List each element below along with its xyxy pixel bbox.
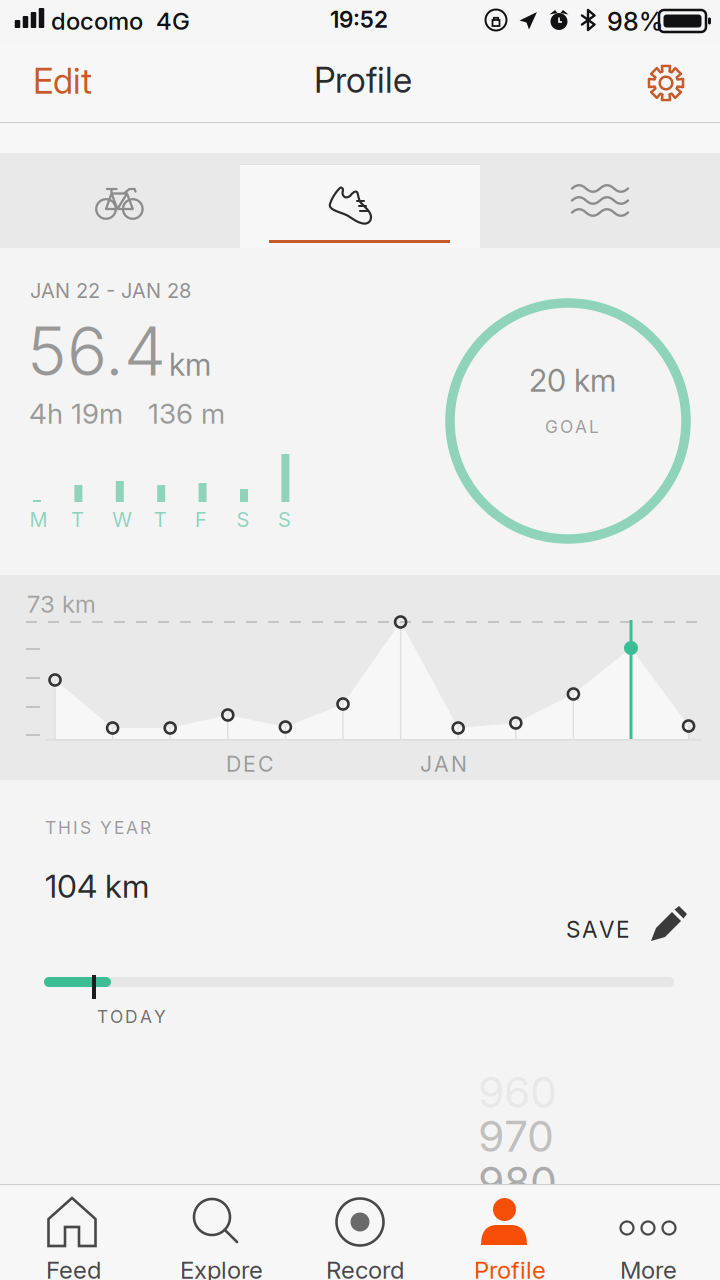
staticText: 73 km [27,590,96,619]
staticText: S A V E [566,916,630,943]
staticText: docomo [51,7,143,36]
staticText: Record [326,1256,404,1280]
staticText: 4h 19m [29,397,123,431]
button[interactable]: Edit [32,48,150,118]
staticText: 980 [478,1156,557,1208]
staticText: G O A L [545,416,599,437]
staticText: JAN 22 - JAN 28 [30,278,191,303]
staticText: S [236,507,249,532]
button[interactable]: Feed [0,1185,144,1280]
button[interactable]: Record [288,1185,432,1280]
button[interactable]: Profile [432,1185,576,1280]
staticText: Profile [314,59,412,101]
staticText: 19:52 [330,6,388,33]
staticText: S [278,507,291,532]
button[interactable]: Settings [629,47,703,119]
staticText: D E C [226,751,274,777]
staticText: km [169,346,211,383]
staticText: J A N [420,751,467,777]
staticText: T [154,507,167,532]
staticText: 4G [156,7,190,36]
staticText: Feed [46,1256,101,1280]
staticText: Edit [33,60,92,102]
button[interactable]: Swim [480,153,720,248]
staticText: M [29,507,47,532]
staticText: 56.4 [27,311,166,392]
staticText: Profile [474,1256,546,1280]
staticText: T O D A Y [97,1006,166,1027]
staticText: 960 [478,1066,557,1118]
button[interactable]: More [576,1185,720,1280]
staticText: W [112,507,132,532]
staticText: 98% [607,6,663,37]
staticText: 136 m [148,397,225,431]
staticText: 970 [478,1110,554,1162]
button[interactable]: Ride [0,153,240,248]
staticText: Explore [180,1256,263,1280]
button[interactable]: Run [240,164,480,248]
staticText: T [71,507,84,532]
staticText: 104 km [45,867,149,905]
button[interactable]: Explore [144,1185,288,1280]
staticText: 20 km [529,362,616,399]
staticText: T H I S Y E A R [45,817,151,838]
staticText: More [620,1256,677,1280]
staticText: F [195,507,207,532]
button[interactable]: S A V E [566,906,691,954]
